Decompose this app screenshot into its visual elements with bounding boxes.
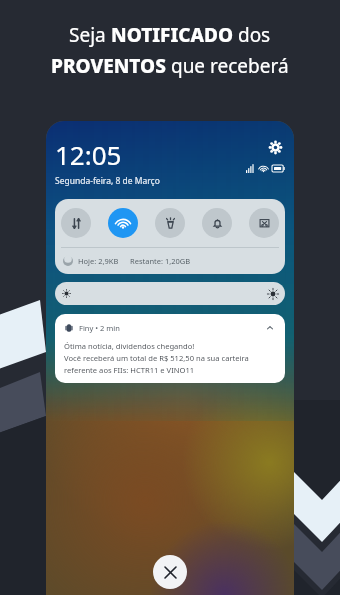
button[interactable]: Finy • 2 min [55, 314, 285, 383]
button[interactable]: Screenshot [249, 208, 279, 238]
staticText: PROVENTOS [51, 53, 166, 79]
button[interactable]: Mobile data [61, 208, 91, 238]
button[interactable]: Collapse [264, 322, 276, 334]
staticText: que receberá [166, 53, 289, 79]
button[interactable]: Settings [265, 137, 285, 157]
button[interactable]: Wi-Fi [108, 208, 138, 238]
staticText: Seja [69, 22, 111, 48]
button[interactable]: Clear all notifications [153, 555, 187, 589]
staticText: Restante: 1,20GB [130, 256, 191, 266]
button[interactable]: Sound [202, 208, 232, 238]
button[interactable]: Flashlight [155, 208, 185, 238]
staticText: Segunda-feira, 8 de Março [55, 175, 160, 187]
button[interactable]: Brightness [55, 282, 285, 305]
staticText: NOTIFICADO [111, 22, 233, 48]
staticText: Finy • 2 min [79, 323, 120, 333]
staticText: Ótima notícia, dividendos chegando! Você… [64, 341, 249, 375]
staticText: dos [233, 22, 271, 48]
staticText: Hoje: 2,9KB [78, 256, 119, 266]
staticText: 12:05 [55, 137, 122, 172]
